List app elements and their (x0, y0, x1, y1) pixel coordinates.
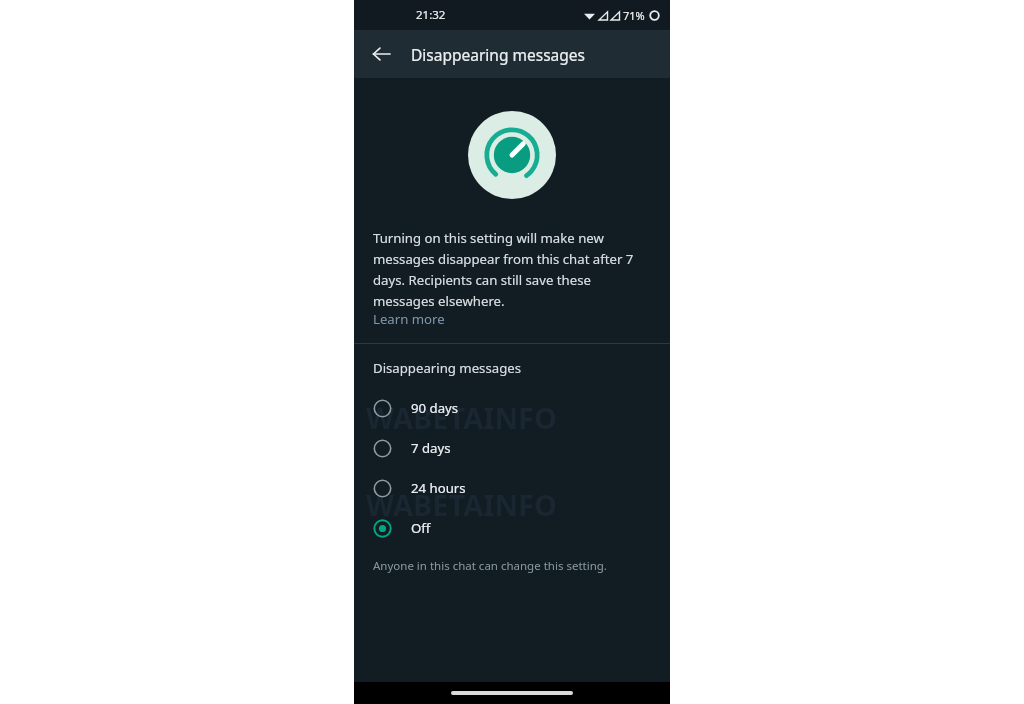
staticText: Disappearing messages (411, 44, 585, 65)
staticText: 21:32 (416, 7, 446, 23)
staticText: Turning on this setting will make new me… (373, 229, 651, 310)
staticText: 7 days (411, 439, 451, 457)
staticText: WABETAINFO (366, 485, 557, 524)
button[interactable]: 24 hours (354, 468, 670, 508)
staticText: Off (411, 519, 431, 537)
button[interactable]: Learn more (373, 310, 445, 328)
button[interactable]: Back (363, 36, 399, 72)
staticText: WABETAINFO (366, 398, 557, 437)
staticText: 90 days (411, 399, 459, 417)
staticText: Anyone in this chat can change this sett… (373, 558, 607, 574)
staticText: Disappearing messages (373, 359, 522, 377)
staticText: 71% (623, 8, 645, 23)
staticText: Learn more (373, 310, 445, 328)
button[interactable]: Off (354, 508, 670, 548)
staticText: 24 hours (411, 479, 466, 497)
button[interactable]: 90 days (354, 388, 670, 428)
button[interactable]: 7 days (354, 428, 670, 468)
